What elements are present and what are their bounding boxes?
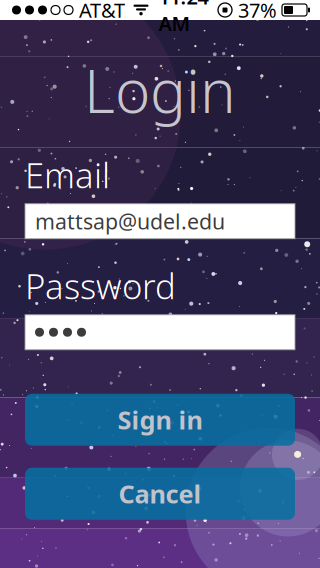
staticText: Password xyxy=(25,263,176,309)
staticText: mattsap@udel.edu xyxy=(35,207,225,235)
staticText: AT&T xyxy=(79,0,125,23)
button[interactable]: Sign in xyxy=(25,394,295,446)
staticText: Login xyxy=(84,50,236,130)
button[interactable]: Cancel xyxy=(25,468,295,520)
staticText: Cancel xyxy=(118,477,201,510)
staticText: 11:24 AM xyxy=(158,0,208,36)
staticText: Sign in xyxy=(117,403,202,436)
staticText: Email xyxy=(25,152,110,198)
staticText: 37% xyxy=(238,0,277,23)
